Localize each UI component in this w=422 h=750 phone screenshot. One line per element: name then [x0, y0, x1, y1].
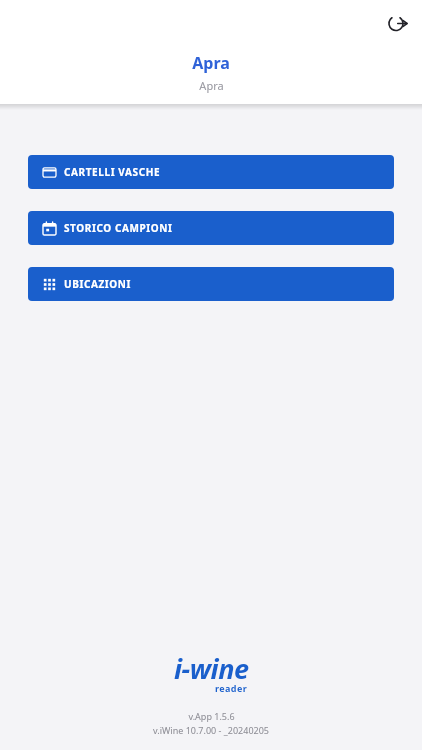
staticText: STORICO CAMPIONI [64, 221, 173, 235]
button[interactable]: Logout [380, 6, 414, 40]
staticText: reader [215, 682, 248, 694]
button[interactable]: CARTELLI VASCHE [28, 155, 394, 189]
staticText: Apra [192, 52, 230, 74]
staticText: v.App 1.5.6 [188, 710, 235, 722]
staticText: UBICAZIONI [64, 277, 132, 291]
staticText: Apra [199, 78, 224, 93]
staticText: v.iWine 10.7.00 - _20240205 [153, 724, 269, 736]
staticText: CARTELLI VASCHE [64, 165, 161, 179]
button[interactable]: UBICAZIONI [28, 267, 394, 301]
staticText: i-wine [174, 650, 249, 687]
button[interactable]: STORICO CAMPIONI [28, 211, 394, 245]
